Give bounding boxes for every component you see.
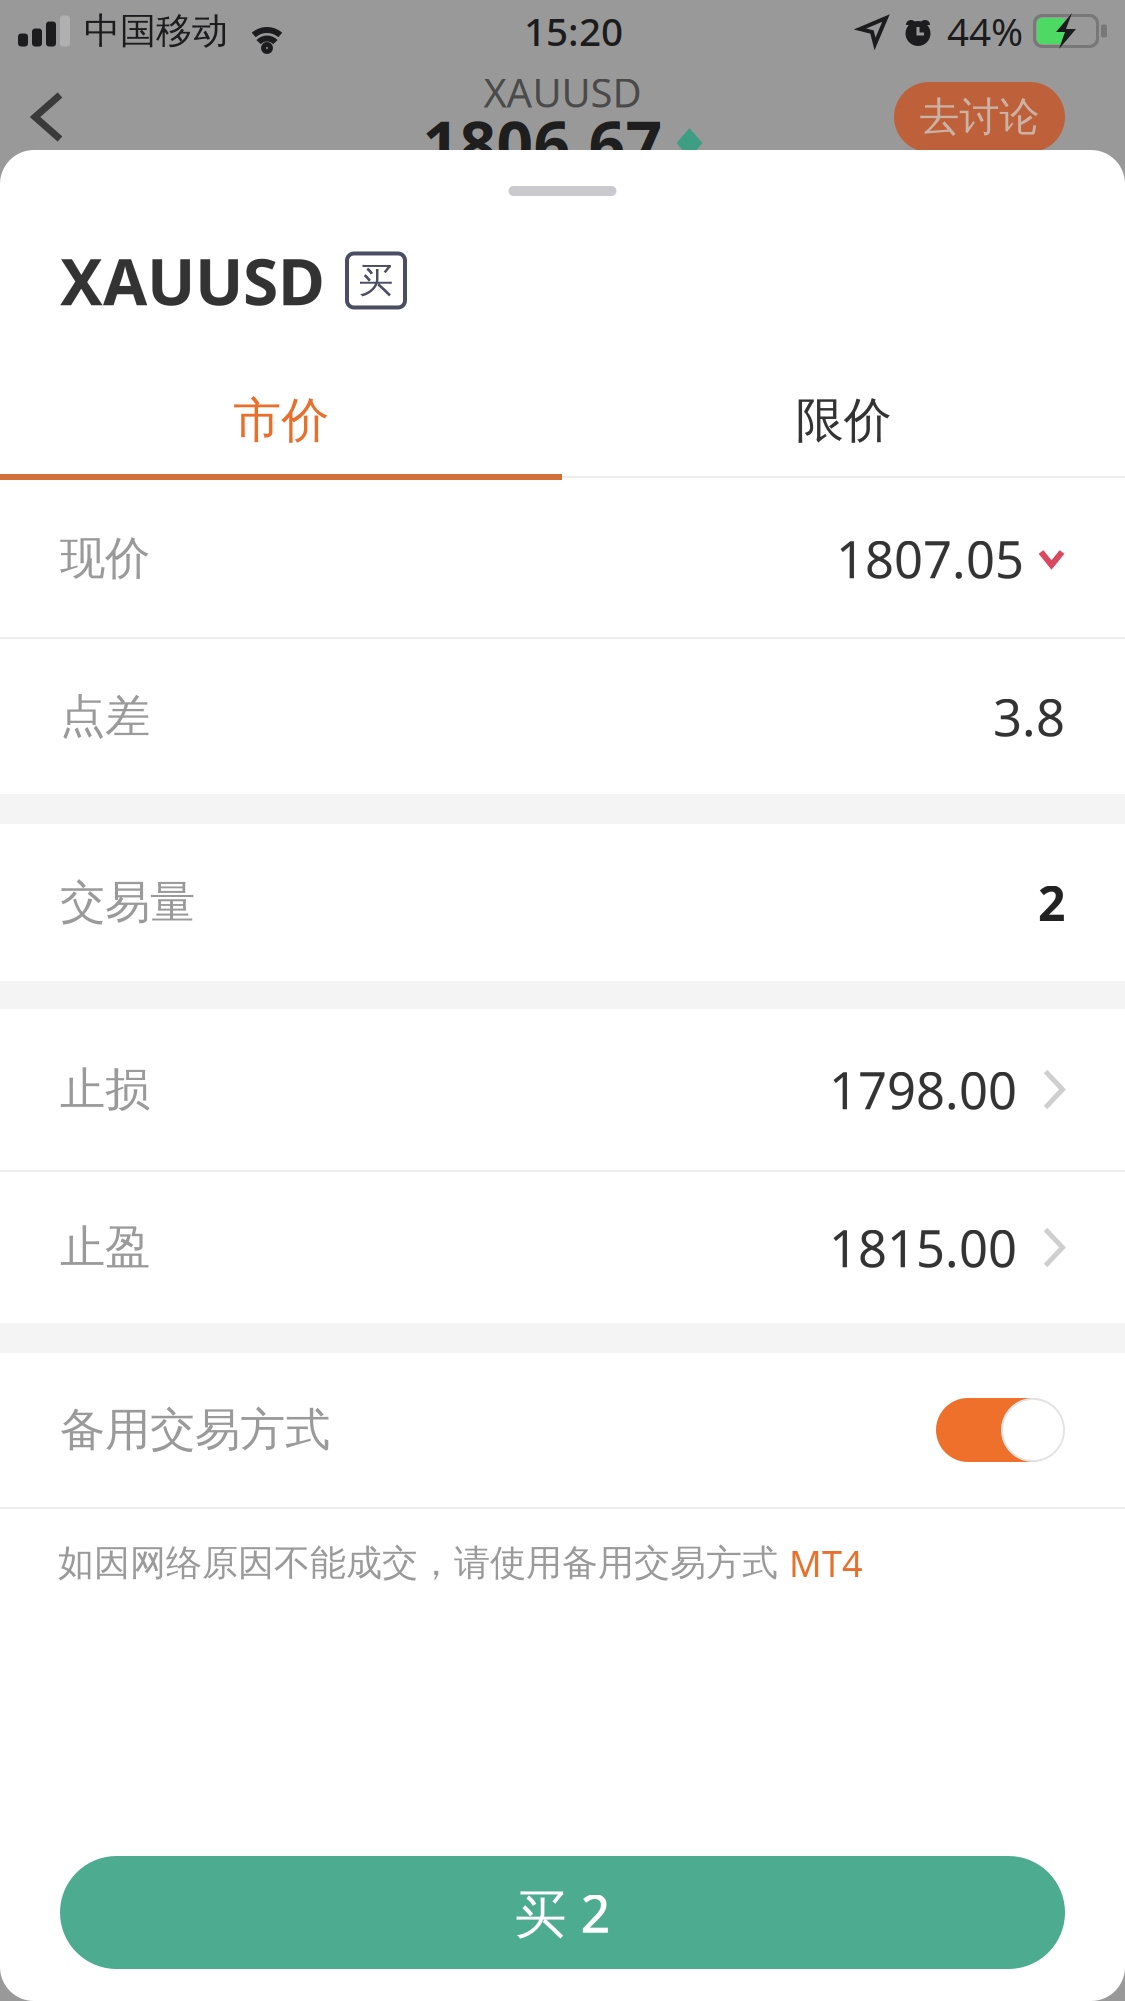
staticText: 限价 [796, 391, 892, 450]
button[interactable]: 去讨论 [894, 82, 1065, 152]
staticText: XAUUSD [483, 65, 641, 118]
staticText: 买 [358, 259, 393, 302]
button[interactable]: 返回 [0, 72, 96, 162]
staticText: 1798.00 [829, 1056, 1017, 1123]
staticText: 止损 [60, 1062, 150, 1117]
button[interactable]: 市价 [0, 367, 562, 474]
staticText: 1815.00 [829, 1214, 1017, 1281]
staticText: 交易量 [60, 875, 195, 930]
staticText: 现价 [60, 531, 150, 586]
staticText: 去讨论 [919, 92, 1039, 141]
staticText: 3.8 [993, 683, 1065, 750]
staticText: XAUUSD [60, 238, 325, 323]
staticText: 1806.67 [422, 100, 662, 185]
button[interactable]: 限价 [562, 367, 1125, 474]
staticText: 2 [1038, 871, 1065, 934]
staticText: 备用交易方式 [60, 1402, 330, 1458]
staticText: 如因网络原因不能成交，请使用备用交易方式 [58, 1541, 789, 1585]
staticText: 点差 [60, 689, 150, 744]
staticText: 市价 [233, 391, 329, 450]
button[interactable]: 备用交易方式 [936, 1398, 1065, 1462]
staticText: 中国移动 [84, 9, 228, 53]
staticText: 15:20 [524, 5, 623, 57]
button[interactable]: 止盈 [0, 1172, 1125, 1323]
button[interactable]: 买 2 [60, 1856, 1065, 1969]
staticText: MT4 [789, 1539, 863, 1587]
staticText: 止盈 [60, 1220, 150, 1275]
staticText: 1807.05 [836, 525, 1024, 592]
button[interactable]: 止损 [0, 1009, 1125, 1170]
staticText: 44% [947, 5, 1023, 57]
staticText: 买 2 [514, 1878, 610, 1947]
